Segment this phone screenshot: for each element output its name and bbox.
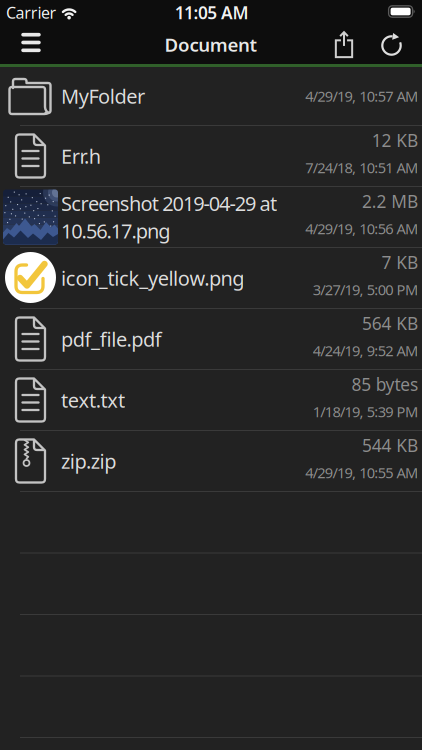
staticText: 4/29/19, 10:56 AM xyxy=(305,219,418,238)
staticText: pdf_file.pdf xyxy=(61,326,162,352)
staticText: 4/24/19, 9:52 AM xyxy=(313,341,418,360)
staticText: 7/24/18, 10:51 AM xyxy=(305,158,418,177)
button[interactable]: MyFolder xyxy=(0,67,422,126)
button[interactable]: Err.h xyxy=(0,126,422,187)
button[interactable]: pdf_file.pdf xyxy=(0,309,422,370)
staticText: 564 KB xyxy=(362,312,418,335)
staticText: Document xyxy=(164,32,258,57)
staticText: 544 KB xyxy=(362,434,418,457)
staticText: 2.2 MB xyxy=(362,190,418,213)
button[interactable]: icon_tick_yellow.png xyxy=(0,248,422,309)
staticText: Carrier xyxy=(6,2,57,23)
staticText: 12 KB xyxy=(372,129,418,152)
staticText: MyFolder xyxy=(61,83,145,109)
staticText: 10.56.17.png xyxy=(61,217,170,244)
staticText: 7 KB xyxy=(382,251,418,274)
staticText: Screenshot 2019-04-29 at xyxy=(61,190,277,216)
button[interactable]: zip.zip xyxy=(0,431,422,492)
button[interactable]: Menu xyxy=(0,25,62,64)
staticText: 1/18/19, 5:39 PM xyxy=(313,402,418,421)
staticText: Err.h xyxy=(61,143,101,169)
button[interactable]: Share xyxy=(322,25,366,64)
button[interactable]: Screenshot 2019-04-29 at xyxy=(0,187,422,248)
staticText: 3/27/19, 5:00 PM xyxy=(313,280,418,299)
staticText: 85 bytes xyxy=(351,373,418,396)
staticText: 11:05 AM xyxy=(175,1,248,24)
staticText: icon_tick_yellow.png xyxy=(61,265,244,291)
staticText: text.txt xyxy=(61,387,125,413)
button[interactable]: text.txt xyxy=(0,370,422,431)
button[interactable]: Refresh xyxy=(366,25,418,64)
staticText: 4/29/19, 10:55 AM xyxy=(305,463,418,482)
staticText: zip.zip xyxy=(61,448,116,474)
staticText: 4/29/19, 10:57 AM xyxy=(305,86,418,106)
